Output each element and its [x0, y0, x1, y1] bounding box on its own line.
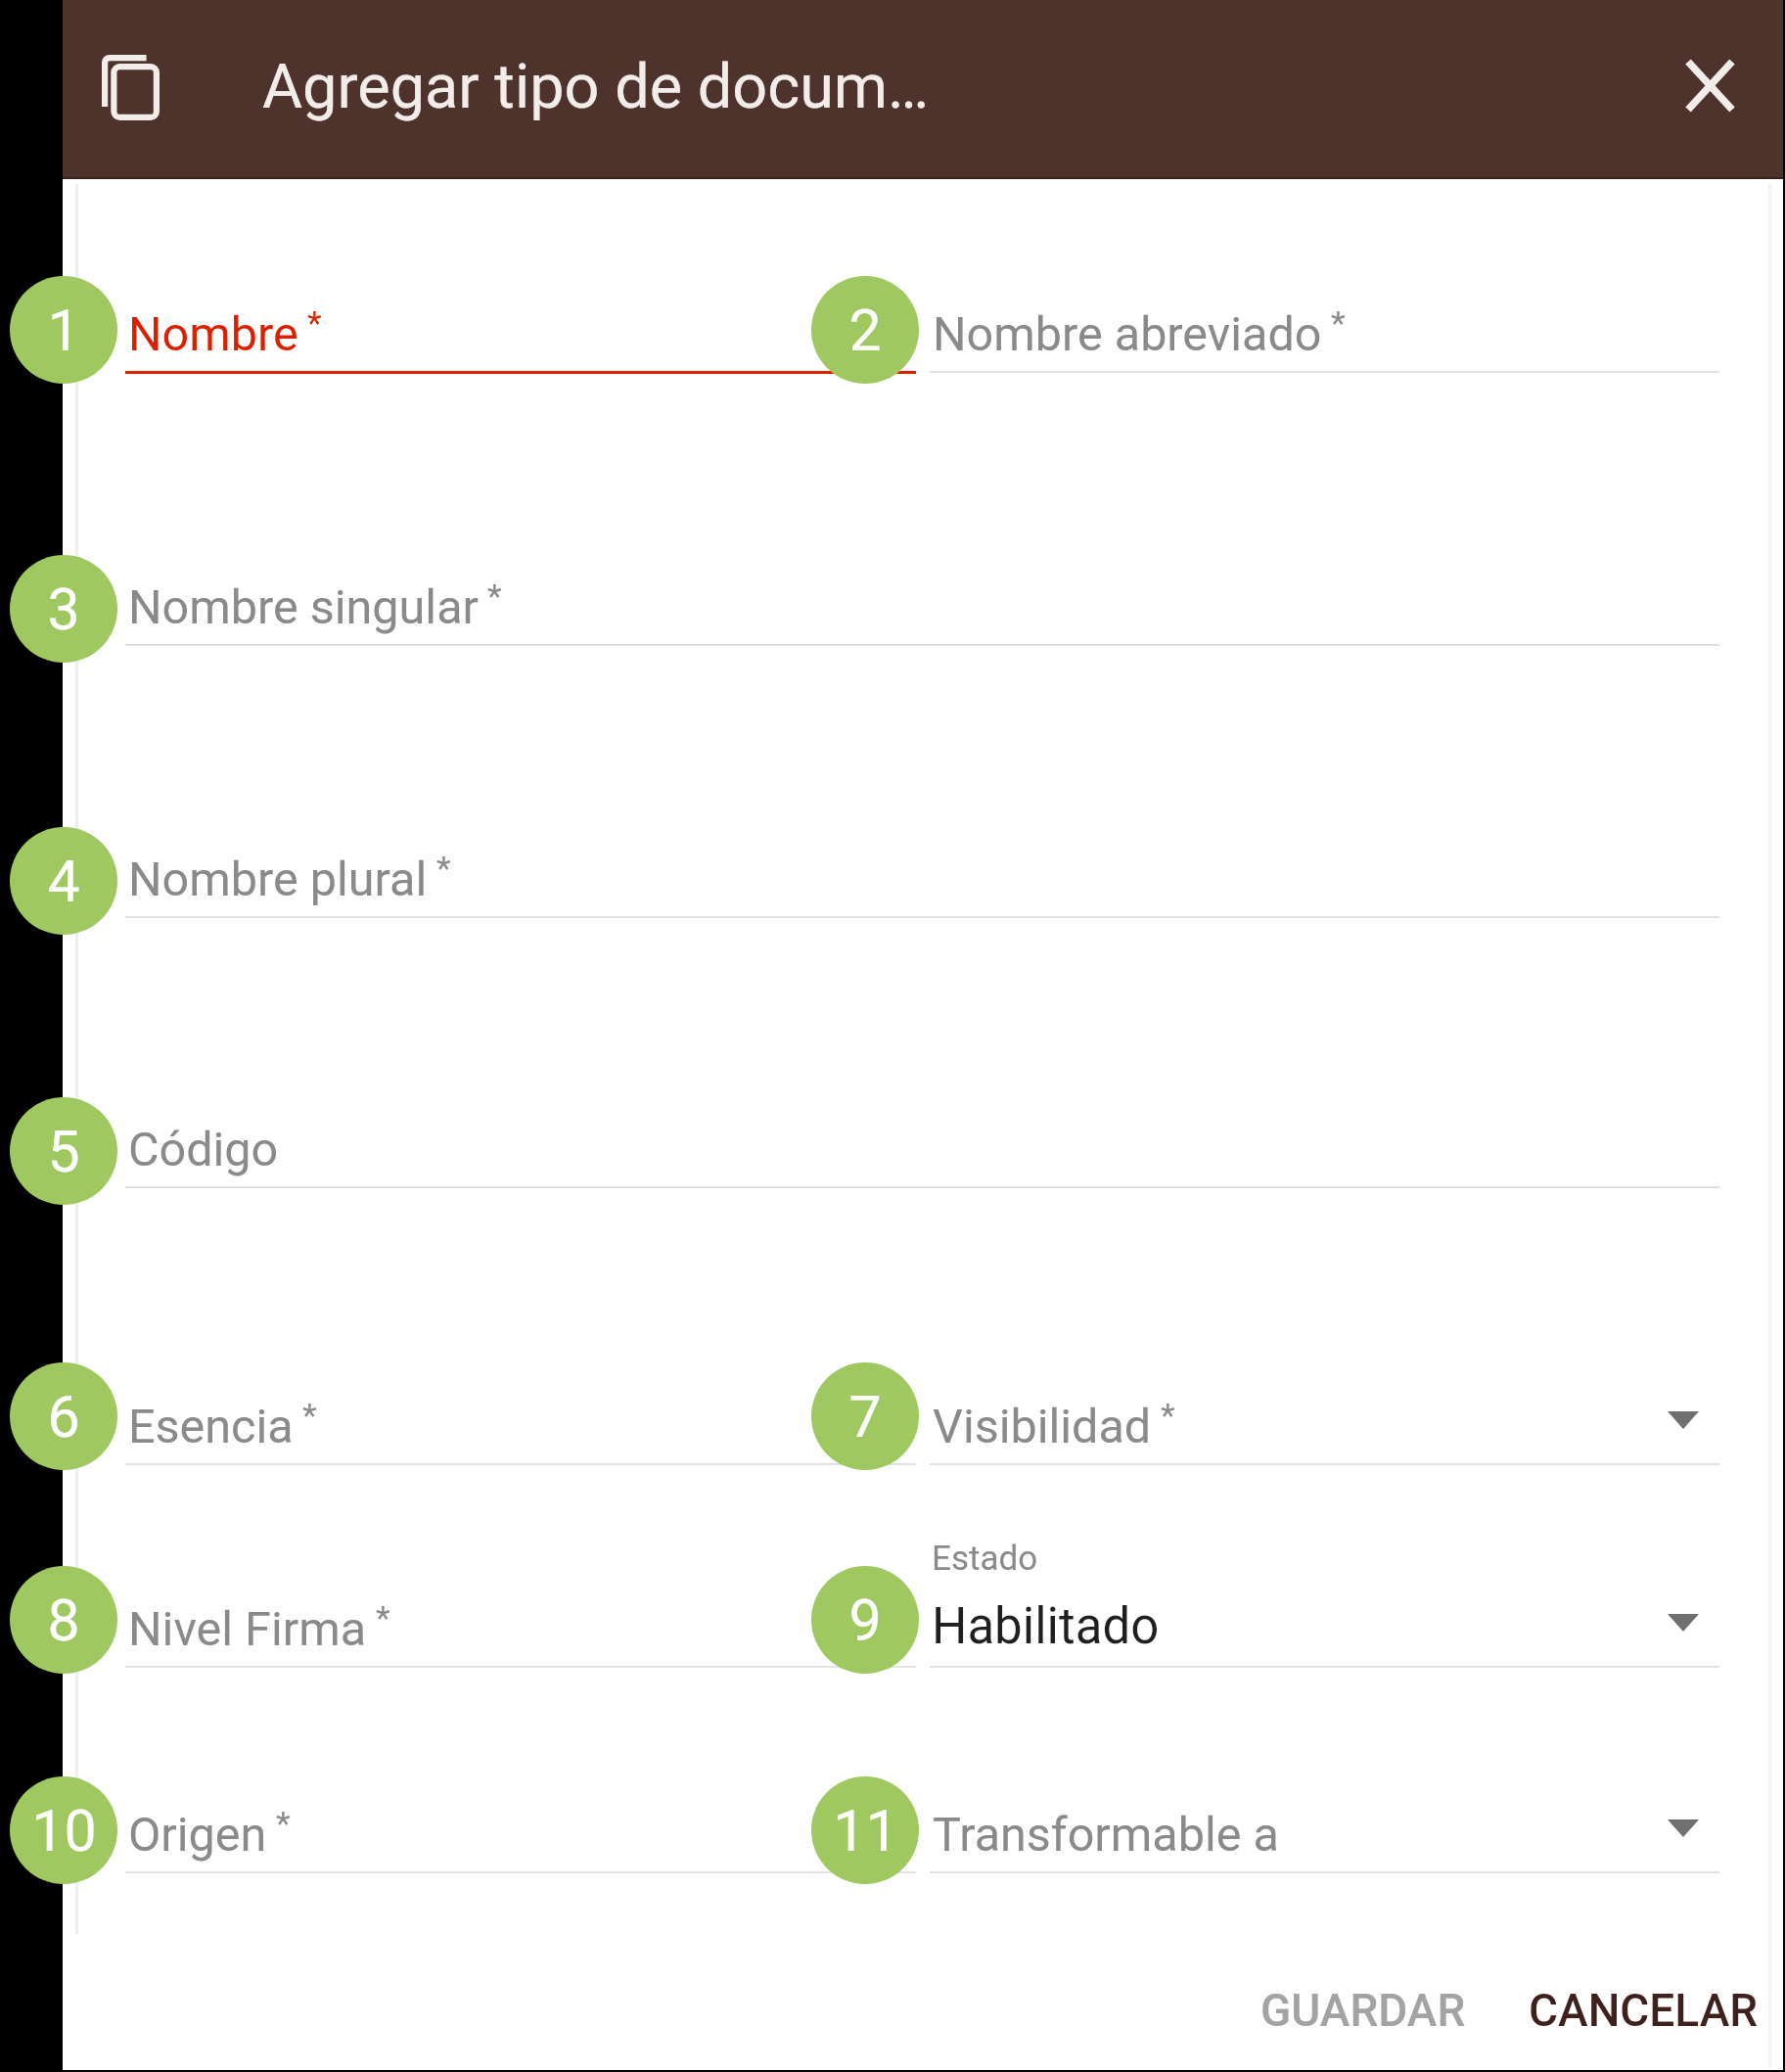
staticText: 5	[47, 1118, 80, 1185]
button[interactable]: Visibilidad	[930, 1354, 1719, 1467]
staticText: Estado	[932, 1539, 1038, 1579]
button[interactable]: CANCELAR	[1523, 1969, 1763, 2051]
button[interactable]: Nombre	[125, 261, 916, 375]
button[interactable]: Nombre abreviado	[930, 261, 1719, 375]
button[interactable]: Estado	[930, 1556, 1719, 1670]
staticText: Código	[128, 1122, 279, 1177]
staticText: 11	[833, 1797, 898, 1865]
staticText: Agregar tipo de docum…	[262, 51, 930, 123]
staticText: Esencia	[128, 1399, 294, 1454]
staticText: 4	[47, 848, 80, 915]
button[interactable]: Close	[1644, 39, 1741, 136]
staticText: Nombre abreviado	[933, 306, 1322, 362]
staticText: 7	[848, 1383, 882, 1450]
button[interactable]: Nombre plural	[125, 806, 1719, 920]
staticText: *	[1161, 1396, 1175, 1435]
staticText: 9	[848, 1587, 882, 1654]
staticText: GUARDAR	[1260, 1984, 1466, 2037]
staticText: *	[487, 576, 502, 616]
staticText: 10	[31, 1797, 97, 1865]
button[interactable]: Transformable a	[930, 1762, 1719, 1875]
button[interactable]: Esencia	[125, 1354, 916, 1467]
staticText: Origen	[128, 1807, 267, 1863]
staticText: 3	[47, 576, 80, 643]
button[interactable]: Código	[125, 1077, 1719, 1190]
staticText: Nombre	[128, 306, 298, 362]
button[interactable]: Nivel Firma	[125, 1556, 916, 1670]
staticText: *	[307, 303, 322, 343]
staticText: *	[302, 1396, 317, 1435]
staticText: *	[436, 849, 451, 888]
button[interactable]: GUARDAR	[1254, 1969, 1473, 2051]
staticText: Habilitado	[932, 1597, 1160, 1656]
staticText: 2	[848, 297, 882, 364]
staticText: Transformable a	[933, 1807, 1279, 1863]
staticText: 1	[47, 297, 80, 364]
staticText: Visibilidad	[933, 1399, 1152, 1454]
staticText: Nombre plural	[128, 852, 428, 907]
staticText: CANCELAR	[1529, 1984, 1759, 2037]
staticText: Nivel Firma	[128, 1601, 367, 1657]
button[interactable]: Document type	[63, 39, 160, 136]
button[interactable]: Origen	[125, 1762, 916, 1875]
staticText: Nombre singular	[128, 579, 479, 635]
staticText: *	[376, 1598, 390, 1637]
staticText: 8	[47, 1587, 80, 1654]
staticText: *	[276, 1804, 291, 1843]
staticText: 6	[47, 1383, 80, 1450]
staticText: *	[1331, 303, 1346, 343]
button[interactable]: Nombre singular	[125, 534, 1719, 648]
